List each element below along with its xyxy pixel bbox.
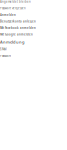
staticText: Mit Google anmelden bbox=[0, 33, 33, 36]
staticText: Anmeldung bbox=[0, 39, 25, 45]
staticText: Mit Facebook anmelden bbox=[0, 26, 36, 30]
staticText: E-Mail bbox=[0, 48, 7, 51]
staticText: Anmelden bbox=[0, 13, 16, 17]
staticText: Passwort vergessen bbox=[0, 6, 26, 10]
staticText: Angemeldet bleiben bbox=[0, 0, 31, 3]
staticText: Benutzerkonto anlegen bbox=[0, 20, 36, 23]
staticText: Passwort bbox=[0, 54, 11, 58]
